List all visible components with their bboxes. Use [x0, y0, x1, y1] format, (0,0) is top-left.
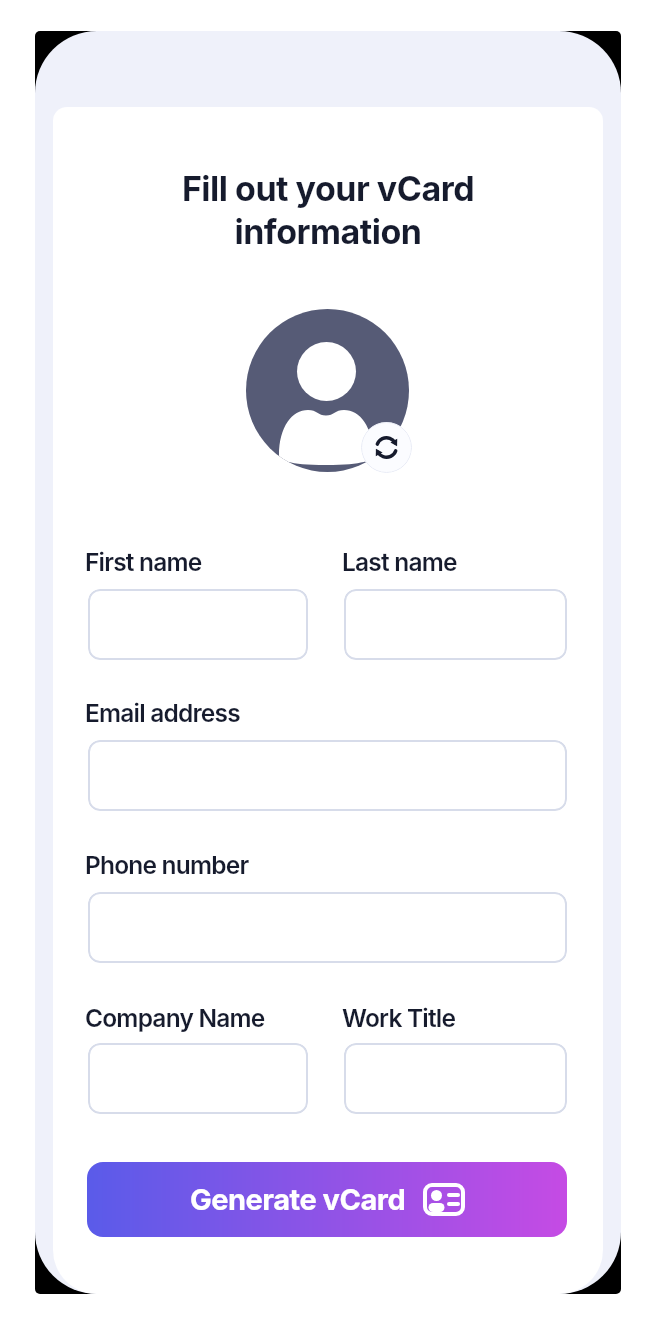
button[interactable]: [88, 740, 567, 811]
button[interactable]: [344, 589, 567, 660]
button[interactable]: Generate vCard: [87, 1162, 567, 1237]
button[interactable]: [344, 1043, 567, 1114]
staticText: Fill out your vCard information: [53, 168, 603, 253]
staticText: Phone number: [85, 850, 249, 880]
button[interactable]: [88, 589, 308, 660]
button[interactable]: [361, 422, 412, 473]
staticText: Company Name: [85, 1003, 265, 1033]
staticText: First name: [85, 547, 202, 577]
button[interactable]: [88, 892, 567, 963]
staticText: Work Title: [342, 1003, 456, 1033]
staticText: Last name: [342, 547, 457, 577]
staticText: Generate vCard: [190, 1182, 406, 1217]
button[interactable]: [88, 1043, 308, 1114]
staticText: Email address: [85, 698, 240, 728]
